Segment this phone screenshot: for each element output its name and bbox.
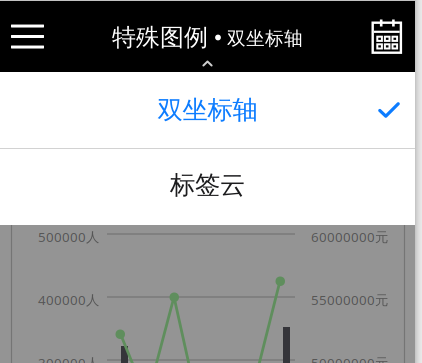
staticText: 双坐标轴: [227, 27, 303, 50]
staticText: 500000人: [38, 228, 99, 246]
staticText: 60000000元: [311, 228, 388, 246]
staticText: 50000000元: [311, 354, 388, 363]
button[interactable]: 标签云: [0, 149, 415, 225]
button[interactable]: Menu: [0, 1, 55, 72]
staticText: 300000人: [38, 354, 99, 363]
button[interactable]: 双坐标轴: [0, 72, 415, 148]
staticText: 55000000元: [311, 291, 388, 309]
staticText: 标签云: [170, 169, 245, 200]
button[interactable]: Calendar: [357, 1, 417, 72]
staticText: 400000人: [38, 291, 99, 309]
staticText: 双坐标轴: [157, 94, 257, 125]
staticText: 特殊图例: [112, 23, 208, 52]
